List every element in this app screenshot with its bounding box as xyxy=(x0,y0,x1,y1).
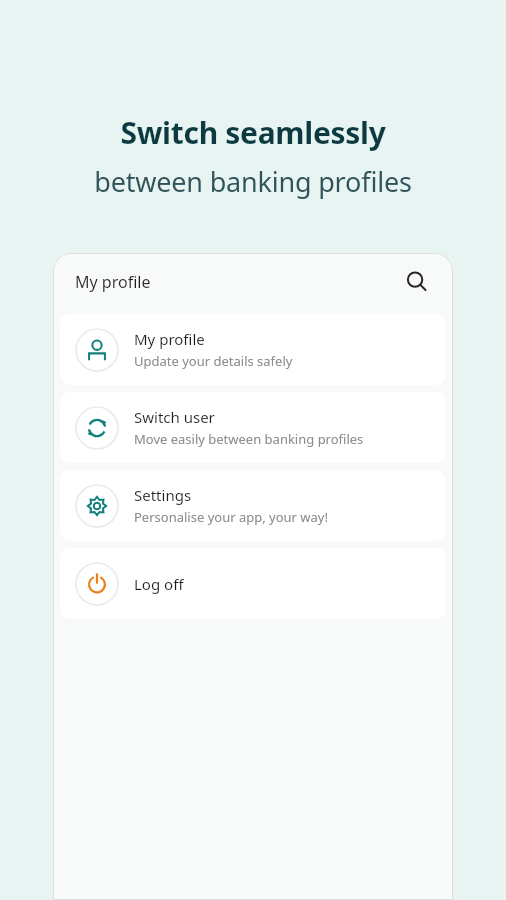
staticText: Switch user xyxy=(134,407,215,427)
staticText: Settings xyxy=(134,485,192,505)
staticText: between banking profiles xyxy=(0,163,506,200)
staticText: My profile xyxy=(134,329,205,349)
button[interactable]: Switch user xyxy=(60,392,446,463)
button[interactable]: Log off xyxy=(60,548,446,619)
staticText: My profile xyxy=(75,271,151,293)
staticText: Move easily between banking profiles xyxy=(134,430,364,448)
staticText: Log off xyxy=(134,574,184,594)
button[interactable]: My profile xyxy=(60,314,446,385)
button[interactable]: Search xyxy=(399,264,435,300)
staticText: Update your details safely xyxy=(134,352,293,370)
button[interactable]: Settings xyxy=(60,470,446,541)
staticText: Personalise your app, your way! xyxy=(134,508,328,526)
staticText: Switch seamlessly xyxy=(0,112,506,153)
